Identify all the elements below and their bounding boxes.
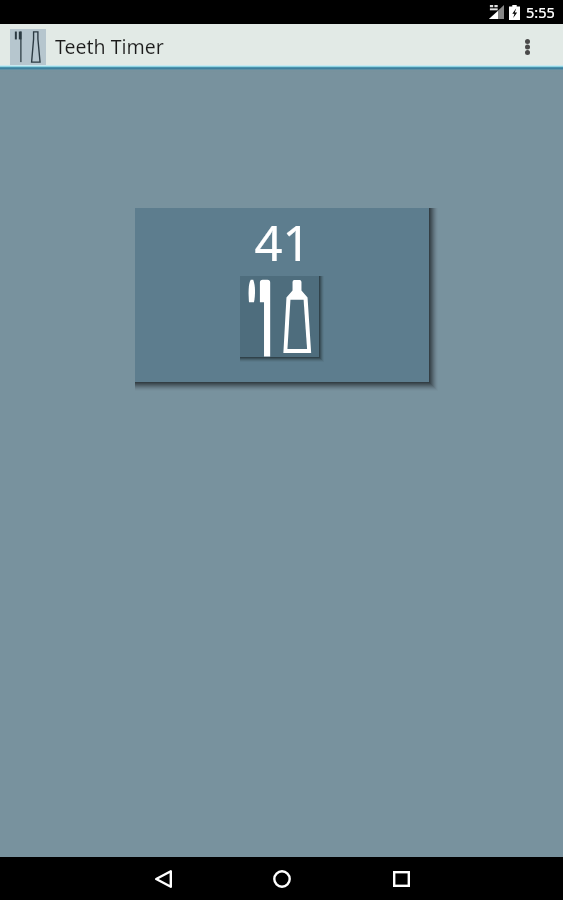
button[interactable]: Home: [253, 857, 310, 900]
button[interactable]: Back: [135, 857, 191, 900]
button[interactable]: More options: [505, 24, 549, 65]
staticText: Teeth Timer: [55, 33, 164, 60]
staticText: 41: [254, 209, 311, 276]
button[interactable]: Recent apps: [373, 857, 429, 900]
staticText: 5:55: [526, 2, 555, 22]
button[interactable]: 41: [135, 208, 429, 382]
